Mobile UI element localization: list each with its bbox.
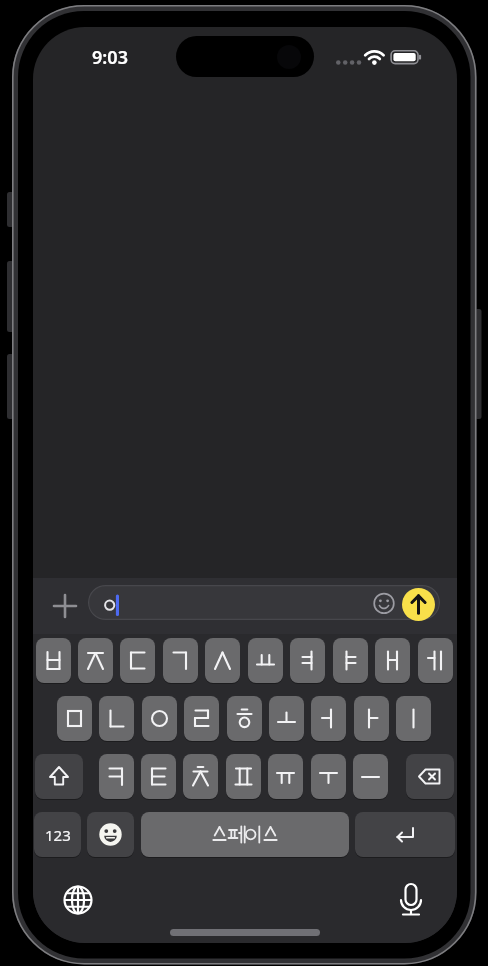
button[interactable] — [418, 638, 453, 683]
button[interactable] — [36, 638, 71, 683]
button[interactable] — [290, 638, 325, 683]
staticText: 9:03 — [92, 45, 128, 70]
button[interactable] — [355, 812, 455, 857]
button[interactable] — [184, 696, 219, 741]
button[interactable] — [354, 696, 389, 741]
button[interactable] — [47, 588, 83, 624]
button[interactable] — [248, 638, 283, 683]
button[interactable] — [227, 696, 262, 741]
button[interactable] — [57, 696, 92, 741]
button[interactable] — [87, 812, 134, 857]
button[interactable] — [163, 638, 198, 683]
button[interactable] — [142, 696, 177, 741]
button[interactable] — [88, 585, 440, 620]
button[interactable] — [78, 638, 113, 683]
button[interactable] — [60, 882, 96, 918]
button[interactable] — [311, 696, 346, 741]
button[interactable] — [34, 812, 81, 857]
button[interactable] — [406, 754, 454, 799]
button[interactable] — [268, 754, 303, 799]
button[interactable] — [269, 696, 304, 741]
button[interactable] — [183, 754, 218, 799]
button[interactable] — [99, 696, 134, 741]
button[interactable] — [402, 588, 435, 621]
button[interactable] — [393, 882, 429, 918]
button[interactable] — [35, 754, 83, 799]
button[interactable] — [353, 754, 388, 799]
button[interactable] — [120, 638, 155, 683]
button[interactable] — [141, 754, 176, 799]
button[interactable] — [375, 638, 410, 683]
button[interactable] — [99, 754, 134, 799]
button[interactable] — [141, 812, 349, 857]
button[interactable] — [226, 754, 261, 799]
button[interactable] — [333, 638, 368, 683]
button[interactable] — [396, 696, 431, 741]
staticText: 123 — [45, 825, 71, 845]
button[interactable] — [205, 638, 240, 683]
button[interactable] — [311, 754, 346, 799]
